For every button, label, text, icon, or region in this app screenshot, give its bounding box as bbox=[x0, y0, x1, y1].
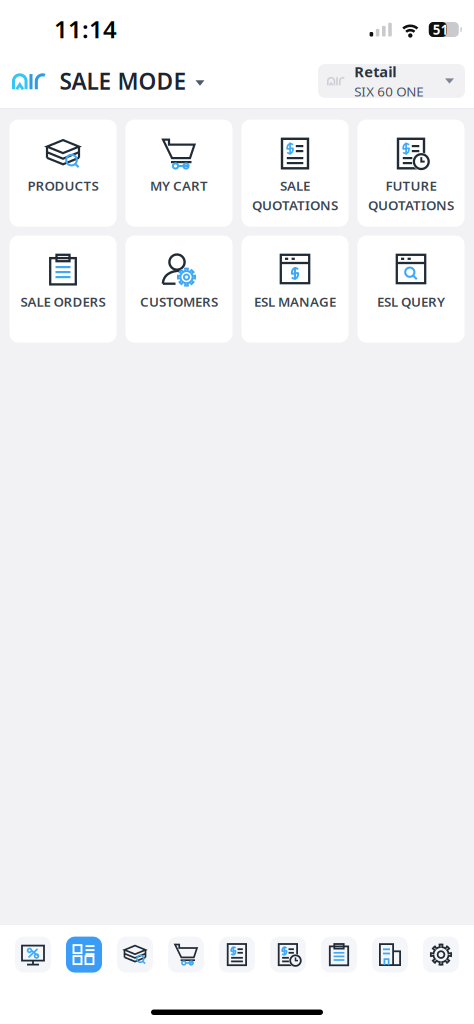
button[interactable]: Customers bbox=[125, 236, 232, 343]
button[interactable]: Sale orders bbox=[9, 236, 116, 343]
staticText: PRODUCTS bbox=[27, 177, 98, 194]
staticText: 51 bbox=[433, 21, 449, 38]
staticText: CUSTOMERS bbox=[140, 293, 218, 310]
staticText: SALE ORDERS bbox=[20, 293, 105, 310]
button[interactable]: Catalog bbox=[66, 937, 102, 973]
button[interactable]: ESL manage bbox=[241, 236, 348, 343]
staticText: SIX 60 ONE bbox=[354, 82, 423, 100]
button[interactable]: Future quotations bbox=[357, 120, 464, 227]
button[interactable]: Future quotations bbox=[270, 937, 306, 973]
staticText: 11:14 bbox=[54, 13, 117, 45]
staticText: MY CART bbox=[150, 177, 208, 194]
staticText: QUOTATIONS bbox=[252, 196, 338, 214]
button[interactable]: Retail bbox=[318, 64, 474, 98]
button[interactable]: Sale quotations bbox=[219, 937, 255, 973]
button[interactable]: Settings bbox=[423, 937, 459, 973]
staticText: ESL QUERY bbox=[377, 293, 445, 310]
staticText: Retail bbox=[354, 62, 396, 81]
staticText: ESL MANAGE bbox=[254, 293, 336, 310]
button[interactable]: Cart bbox=[168, 937, 204, 973]
button[interactable]: Products bbox=[9, 120, 116, 227]
button[interactable]: My cart bbox=[125, 120, 232, 227]
staticText: FUTURE bbox=[385, 177, 436, 194]
button[interactable]: Products bbox=[117, 937, 153, 973]
button[interactable]: Sale quotations bbox=[241, 120, 348, 227]
staticText: SALE bbox=[280, 177, 310, 194]
button[interactable]: Orders bbox=[321, 937, 357, 973]
staticText: QUOTATIONS bbox=[368, 196, 454, 214]
button[interactable]: ESL query bbox=[357, 236, 464, 343]
button[interactable]: Dashboard bbox=[15, 937, 51, 973]
staticText: SALE MODE bbox=[59, 66, 186, 96]
button[interactable]: SALE MODE bbox=[0, 66, 204, 96]
button[interactable]: Reports bbox=[372, 937, 408, 973]
